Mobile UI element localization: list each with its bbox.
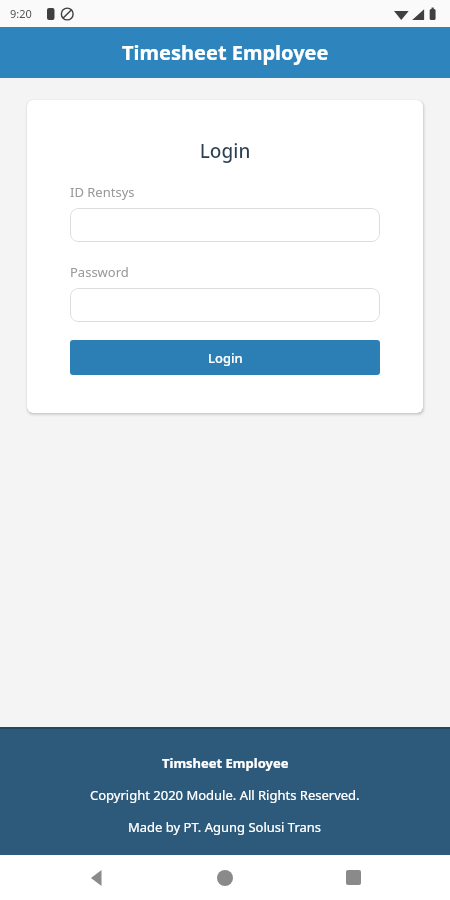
button[interactable]: Login — [70, 340, 380, 375]
staticText: Timsheet Employee — [162, 754, 289, 772]
staticText: Login — [70, 138, 380, 164]
staticText: Login — [208, 349, 243, 367]
button[interactable]: Home — [195, 855, 255, 900]
staticText: 9:20 — [10, 6, 32, 21]
button[interactable]: Back — [68, 855, 128, 900]
staticText: Timesheet Employee — [122, 39, 329, 66]
button[interactable] — [70, 208, 380, 242]
staticText: Made by PT. Agung Solusi Trans — [128, 818, 322, 836]
button[interactable] — [70, 288, 380, 322]
staticText: Copyright 2020 Module. All Rights Reserv… — [90, 786, 360, 804]
staticText: ID Rentsys — [70, 183, 135, 201]
button[interactable]: Recent apps — [323, 855, 383, 900]
staticText: Password — [70, 263, 129, 281]
